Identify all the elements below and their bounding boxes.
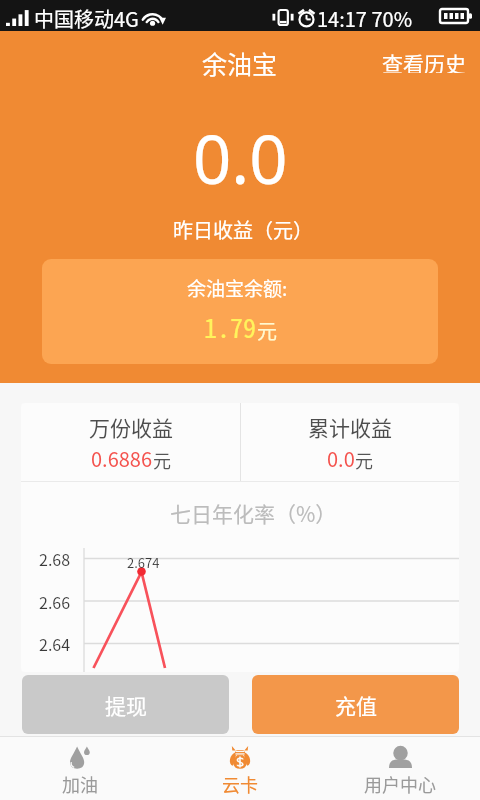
staticText: 中国移动4G: [34, 4, 139, 33]
staticText: 云卡: [222, 771, 258, 797]
staticText: 2.68: [39, 547, 71, 570]
button[interactable]: 查看历史: [366, 31, 480, 85]
staticText: 用户中心: [364, 771, 436, 797]
staticText: 查看历史: [382, 48, 466, 73]
staticText: 2.66: [39, 590, 71, 613]
button[interactable]: 累计收益: [240, 403, 459, 481]
button[interactable]: 余油宝余额:: [42, 259, 438, 364]
staticText: 充值: [335, 690, 377, 720]
button[interactable]: 云卡: [160, 737, 320, 800]
staticText: 0.6886: [91, 444, 153, 473]
staticText: 2.64: [39, 632, 71, 655]
staticText: 2.674: [127, 553, 160, 572]
staticText: 七日年化率（%）: [170, 498, 337, 528]
other: 云卡: [228, 746, 252, 769]
staticText: 元: [153, 447, 171, 473]
staticText: 0.0: [327, 444, 355, 473]
staticText: 加油: [62, 771, 98, 797]
staticText: 元: [257, 316, 277, 345]
button[interactable]: 提现: [22, 675, 229, 734]
staticText: 0.0: [193, 112, 288, 203]
staticText: 14:17 70%: [317, 4, 413, 33]
button[interactable]: 万份收益: [21, 403, 240, 481]
staticText: 累计收益: [308, 412, 392, 442]
staticText: 余油宝: [202, 45, 278, 81]
button[interactable]: 用户中心: [320, 737, 480, 800]
staticText: 提现: [105, 690, 147, 720]
button[interactable]: 充值: [252, 675, 459, 734]
staticText: 昨日收益（元）: [173, 215, 313, 244]
other: 用户中心: [389, 746, 412, 768]
staticText: 万份收益: [89, 412, 173, 442]
staticText: 余油宝余额:: [187, 274, 288, 302]
staticText: 元: [355, 447, 373, 473]
button[interactable]: 加油: [0, 737, 160, 800]
other: 加油: [70, 746, 90, 769]
staticText: 1.79: [204, 308, 257, 346]
